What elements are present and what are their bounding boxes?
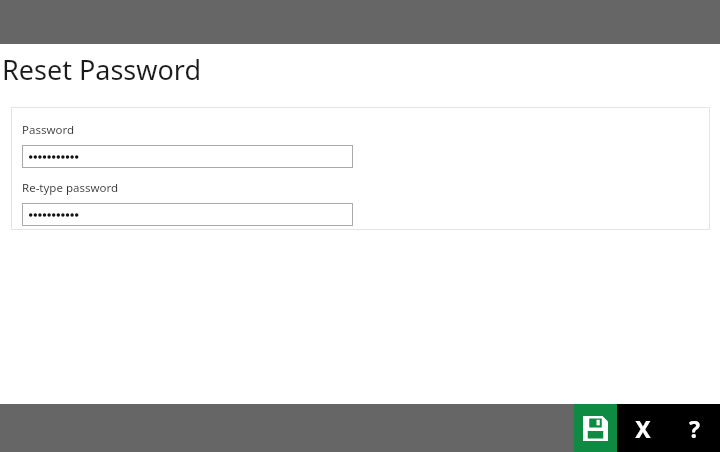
button[interactable]: Password input <box>22 145 353 168</box>
staticText: Password <box>22 122 75 138</box>
button[interactable]: Password input <box>22 203 353 226</box>
button[interactable]: Save <box>574 404 617 452</box>
button[interactable]: ? <box>669 404 720 452</box>
staticText: Reset Password <box>2 51 202 88</box>
staticText: ? <box>689 413 700 444</box>
button[interactable]: X <box>617 404 669 452</box>
staticText: X <box>635 413 651 444</box>
staticText: Re-type password <box>22 180 119 196</box>
